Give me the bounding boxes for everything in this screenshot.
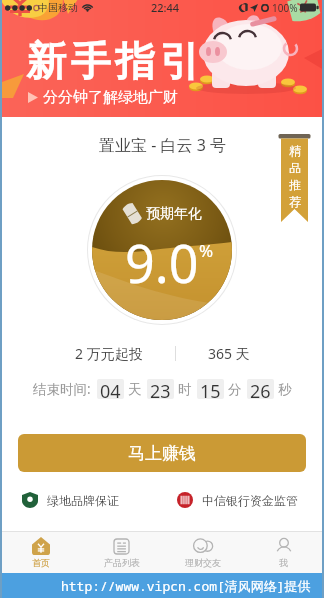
staticText: 22:44 [151, 0, 180, 15]
staticText: 预期年化 [146, 205, 202, 223]
staticText: 2 万元起投 [75, 344, 143, 363]
button[interactable]: 产品列表 [81, 532, 162, 573]
staticText: 时 [178, 381, 192, 398]
staticText: 04 [100, 379, 121, 399]
staticText: http://www.vipcn.com[清风网络]提供 [61, 577, 311, 595]
button[interactable]: 我 [243, 532, 324, 573]
staticText: 365 天 [208, 344, 250, 363]
staticText: 首页 [32, 557, 50, 568]
staticText: 中国移动 [38, 1, 78, 14]
staticText: % [199, 239, 214, 262]
staticText: 置业宝 - 白云 3 号 [99, 134, 226, 156]
staticText: 产品列表 [104, 557, 140, 568]
staticText: 推 [289, 177, 301, 192]
staticText: 23 [150, 379, 171, 399]
staticText: 中信银行资金监管 [202, 493, 298, 508]
staticText: 马上赚钱 [128, 443, 196, 464]
staticText: 分分钟了解绿地广财 [43, 88, 178, 107]
staticText: 26 [250, 379, 271, 399]
staticText: 绿地品牌保证 [47, 493, 119, 508]
staticText: 精 [289, 143, 301, 158]
button[interactable]: 首页 [0, 532, 81, 573]
staticText: 品 [289, 160, 301, 175]
staticText: 荐 [289, 194, 301, 209]
staticText: 我 [279, 557, 288, 568]
staticText: 秒 [278, 381, 292, 398]
button[interactable]: 理财交友 [162, 532, 243, 573]
staticText: 15 [200, 379, 221, 399]
button[interactable]: 马上赚钱 [18, 434, 306, 472]
staticText: 9.0 [125, 227, 199, 298]
staticText: 理财交友 [185, 557, 221, 568]
staticText: 新手指引 [24, 36, 202, 86]
staticText: 100% [272, 1, 298, 15]
staticText: 分 [228, 381, 242, 398]
staticText: 天 [128, 381, 142, 398]
staticText: 结束时间: [33, 380, 91, 398]
